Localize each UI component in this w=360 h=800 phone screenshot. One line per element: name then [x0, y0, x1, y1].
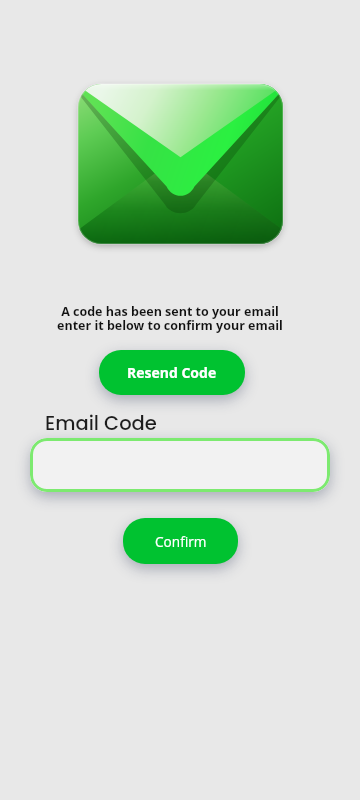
staticText: Confirm: [155, 532, 207, 551]
button[interactable]: Confirm: [123, 518, 238, 564]
staticText: Email Code: [45, 410, 157, 437]
button[interactable]: [30, 438, 330, 492]
button[interactable]: Resend Code: [99, 350, 245, 395]
staticText: Resend Code: [127, 363, 217, 382]
staticText: A code has been sent to your email enter…: [0, 303, 350, 334]
other: Email: [78, 84, 283, 244]
